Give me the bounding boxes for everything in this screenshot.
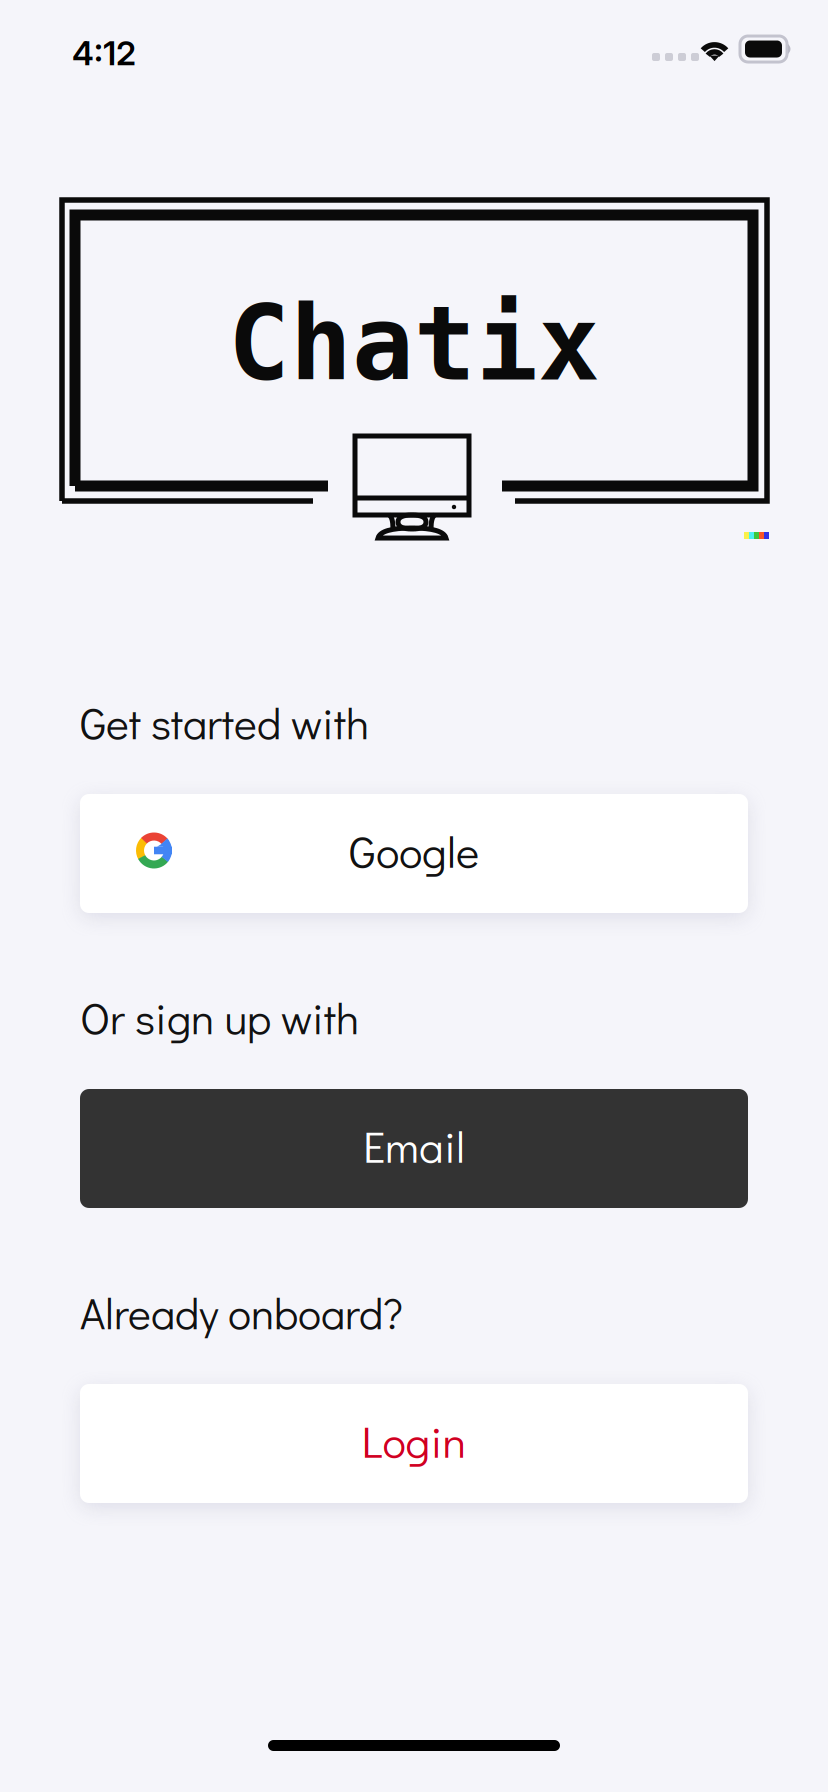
button[interactable]: Email [80, 1089, 748, 1208]
staticText: Already onboard? [80, 1284, 403, 1341]
staticText: Email [363, 1117, 465, 1174]
staticText: Get started with [80, 694, 369, 751]
staticText: Login [361, 1412, 466, 1469]
staticText: 4:12 [72, 33, 136, 73]
button[interactable]: Google [80, 794, 748, 913]
staticText: Or sign up with [80, 989, 359, 1046]
staticText: Chatix [228, 284, 600, 404]
staticText: Google [349, 822, 479, 879]
button[interactable]: Login [80, 1384, 748, 1503]
